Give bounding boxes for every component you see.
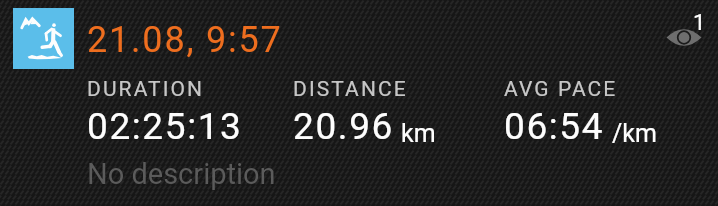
staticText: 21.08, 9:57 — [87, 19, 283, 61]
staticText: 1 — [693, 10, 706, 36]
staticText: DURATION — [87, 77, 205, 102]
button[interactable]: Trail running activity — [13, 8, 74, 69]
staticText: 02:25:13 — [87, 105, 243, 148]
button[interactable]: Views — [658, 10, 710, 54]
staticText: 06:54 — [504, 105, 605, 148]
staticText: /km — [612, 119, 657, 148]
staticText: AVG PACE — [504, 77, 618, 102]
staticText: DISTANCE — [293, 77, 408, 102]
button[interactable]: Trail running activity — [0, 0, 718, 206]
staticText: No description — [87, 157, 276, 191]
staticText: km — [401, 119, 436, 148]
staticText: 20.96 — [293, 105, 394, 148]
